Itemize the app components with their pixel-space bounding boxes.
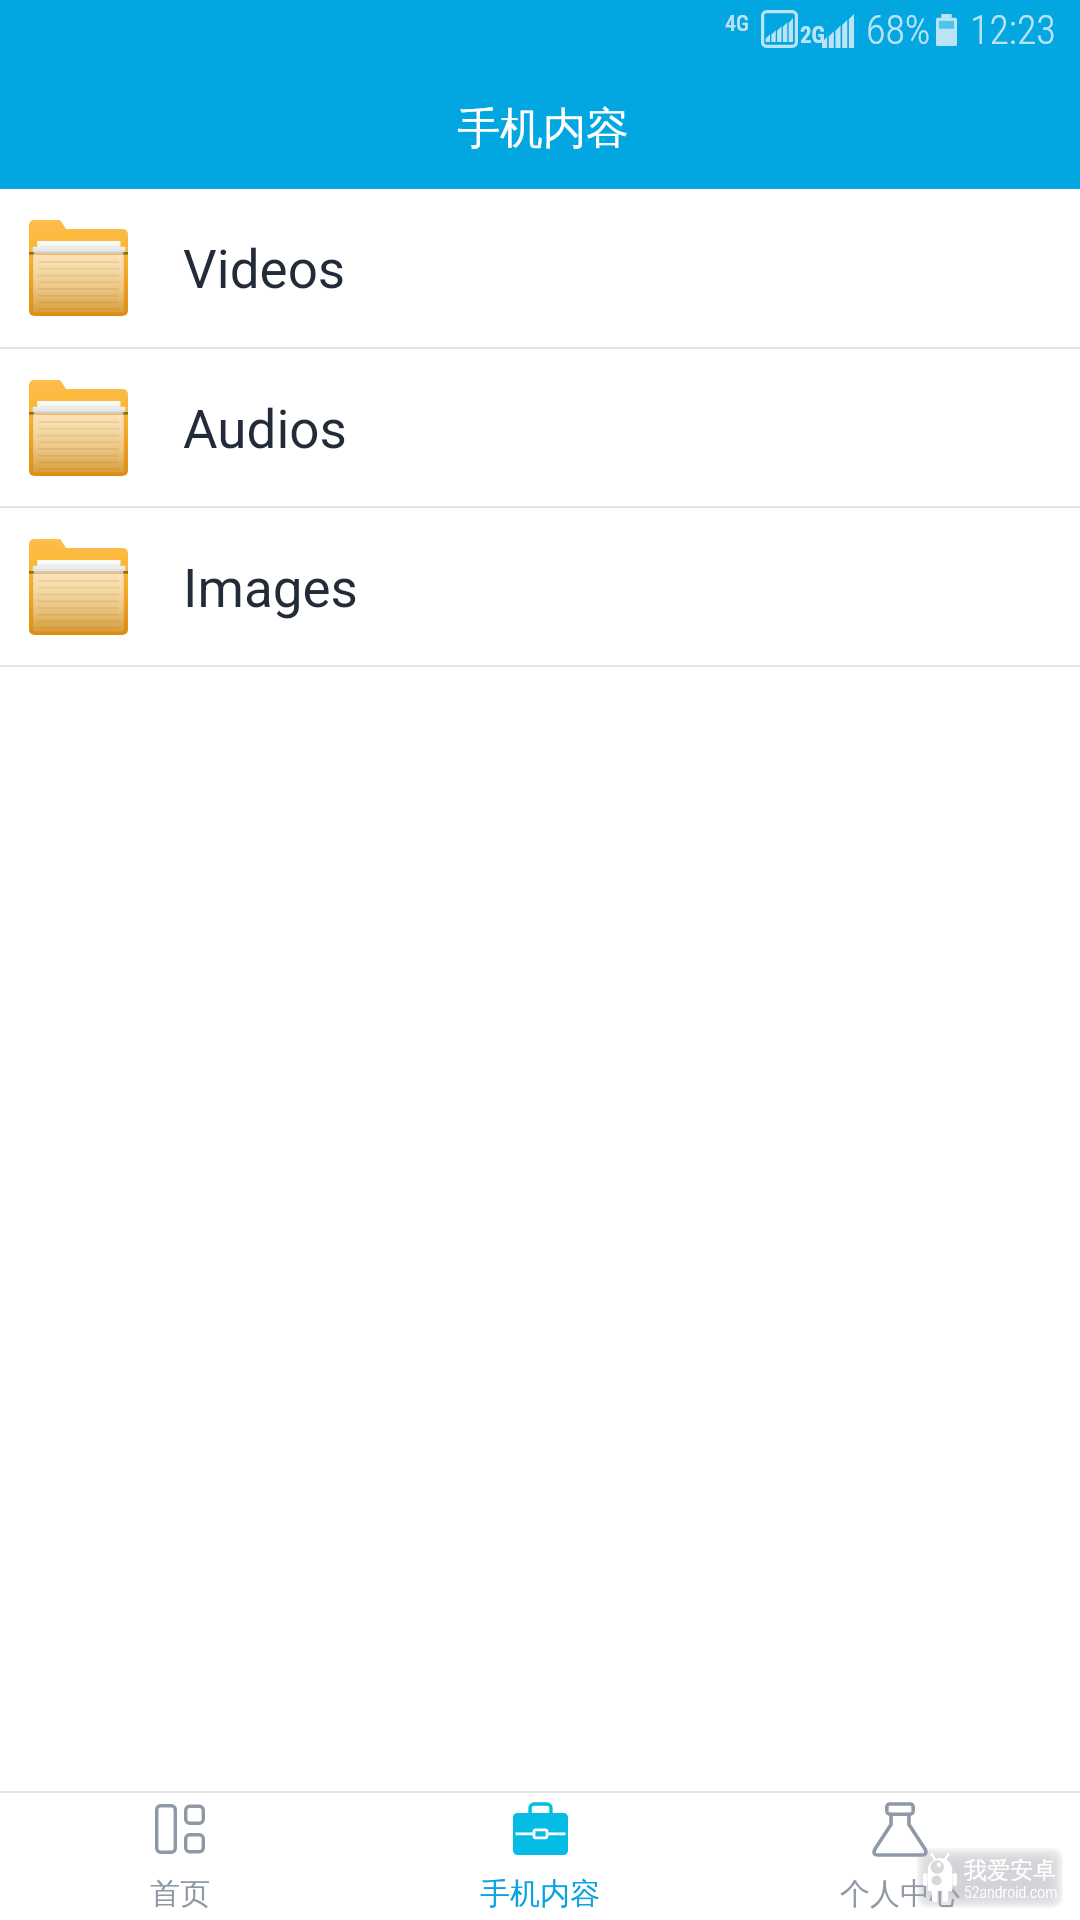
staticText: 手机内容 bbox=[480, 1875, 600, 1913]
button[interactable]: Images bbox=[0, 508, 1080, 665]
staticText: Images bbox=[183, 558, 358, 620]
staticText: 首页 bbox=[150, 1875, 210, 1913]
staticText: 12:23 bbox=[970, 7, 1056, 54]
staticText: 我爱安卓 bbox=[964, 1856, 1056, 1885]
staticText: 2G bbox=[800, 22, 826, 49]
staticText: 手机内容 bbox=[457, 102, 629, 156]
staticText: 个人中心 bbox=[840, 1875, 960, 1913]
staticText: Audios bbox=[183, 399, 347, 461]
staticText: 68% bbox=[866, 7, 931, 54]
button[interactable]: 首页 bbox=[0, 1793, 360, 1920]
staticText: Videos bbox=[183, 239, 346, 301]
button[interactable]: Audios bbox=[0, 349, 1080, 506]
staticText: 52android.com bbox=[964, 1883, 1058, 1902]
button[interactable]: Videos bbox=[0, 189, 1080, 347]
staticText: 4G bbox=[725, 11, 749, 37]
button[interactable]: 个人中心 bbox=[720, 1793, 1080, 1920]
button[interactable]: 手机内容 bbox=[360, 1793, 720, 1920]
